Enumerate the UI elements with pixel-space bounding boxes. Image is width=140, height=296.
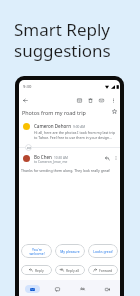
button[interactable]: Back bbox=[20, 95, 31, 106]
button[interactable]: More options bbox=[108, 95, 119, 106]
button[interactable]: Mark unread bbox=[96, 95, 107, 106]
button[interactable]: Chat bbox=[45, 281, 70, 296]
staticText: Hi all, here are the photos I took from … bbox=[34, 130, 116, 140]
staticText: Cameron Dehorn bbox=[34, 123, 71, 129]
button[interactable]: My pleasure bbox=[55, 244, 85, 258]
button[interactable]: Mail bbox=[19, 281, 45, 296]
staticText: You're welcome! bbox=[29, 247, 45, 256]
button[interactable]: Looks great! bbox=[88, 244, 118, 258]
staticText: 9:00 AM bbox=[73, 125, 86, 129]
button[interactable]: Reply bbox=[103, 154, 111, 162]
button[interactable]: Archive bbox=[74, 95, 85, 106]
button[interactable]: Spaces bbox=[70, 281, 95, 296]
staticText: My pleasure bbox=[60, 249, 80, 254]
button[interactable]: Cameron Dehorn bbox=[34, 123, 120, 140]
staticText: to Cameron, Jesse, me bbox=[34, 160, 68, 164]
button[interactable]: Expand hidden messages bbox=[25, 144, 32, 151]
staticText: Thanks for sending them along. They look… bbox=[21, 168, 111, 173]
button[interactable]: Reply all bbox=[55, 265, 85, 275]
staticText: Reply bbox=[35, 268, 44, 273]
staticText: Bo Chen bbox=[34, 154, 52, 160]
staticText: Reply all bbox=[66, 268, 80, 273]
button[interactable]: Forward bbox=[88, 265, 118, 275]
button[interactable]: Meet bbox=[95, 281, 120, 296]
staticText: Looks great! bbox=[93, 249, 113, 254]
staticText: Smart Reply suggestions bbox=[14, 18, 111, 62]
staticText: Photos from my road trip bbox=[22, 109, 86, 116]
button[interactable]: You're welcome! bbox=[21, 244, 52, 258]
button[interactable]: Bo Chen bbox=[34, 154, 104, 164]
staticText: 10:30 AM bbox=[54, 156, 68, 160]
button[interactable]: Reply bbox=[21, 265, 52, 275]
button[interactable]: Star bbox=[110, 107, 119, 116]
button[interactable]: More options bbox=[112, 154, 120, 162]
button[interactable]: Delete bbox=[85, 95, 96, 106]
staticText: 9:30 bbox=[23, 84, 32, 90]
staticText: Forward bbox=[99, 268, 113, 273]
